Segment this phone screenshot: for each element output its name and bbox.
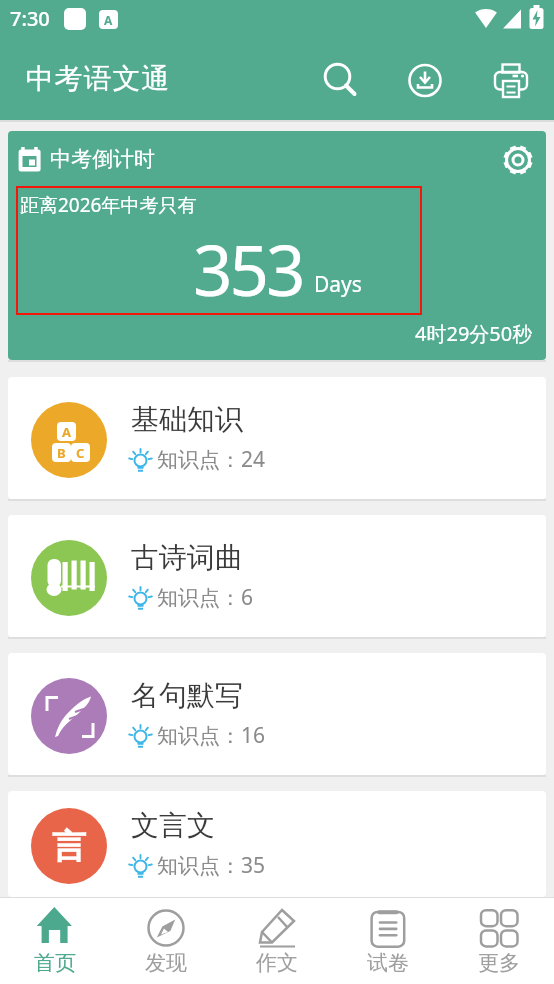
- staticText: 4时29分50秒: [415, 320, 533, 347]
- button[interactable]: 古诗词曲: [8, 515, 546, 637]
- staticText: 首页: [34, 950, 76, 976]
- staticText: A: [62, 423, 71, 441]
- staticText: 知识点：6: [157, 583, 254, 612]
- staticText: 文言文: [131, 808, 215, 843]
- button[interactable]: A: [8, 377, 546, 499]
- staticText: A: [104, 12, 113, 28]
- staticText: 古诗词曲: [131, 540, 243, 575]
- button[interactable]: 首页: [0, 897, 110, 984]
- staticText: 基础知识: [131, 402, 243, 437]
- staticText: 知识点：16: [157, 721, 266, 750]
- button[interactable]: [401, 55, 449, 103]
- staticText: 中考倒计时: [50, 146, 155, 172]
- button[interactable]: 发现: [110, 897, 221, 984]
- staticText: 知识点：24: [157, 445, 266, 474]
- staticText: Days: [314, 270, 362, 299]
- staticText: 名句默写: [131, 678, 243, 713]
- staticText: B: [57, 444, 66, 462]
- staticText: 更多: [478, 950, 520, 976]
- button[interactable]: 言: [8, 791, 546, 897]
- staticText: 中考语文通: [25, 61, 170, 96]
- button[interactable]: 中考倒计时: [8, 131, 546, 360]
- staticText: 试卷: [367, 950, 409, 976]
- button[interactable]: 作文: [221, 897, 332, 984]
- button[interactable]: 名句默写: [8, 653, 546, 775]
- staticText: 作文: [256, 950, 298, 976]
- staticText: 7:30: [10, 5, 50, 32]
- staticText: 发现: [145, 950, 187, 976]
- staticText: C: [76, 444, 85, 462]
- staticText: 知识点：35: [157, 851, 266, 880]
- staticText: 言: [52, 825, 86, 868]
- button[interactable]: [487, 55, 535, 103]
- staticText: 353: [193, 222, 303, 316]
- button[interactable]: 试卷: [332, 897, 443, 984]
- button[interactable]: 更多: [443, 897, 554, 984]
- staticText: 距离2026年中考只有: [20, 192, 197, 218]
- button[interactable]: [314, 55, 362, 103]
